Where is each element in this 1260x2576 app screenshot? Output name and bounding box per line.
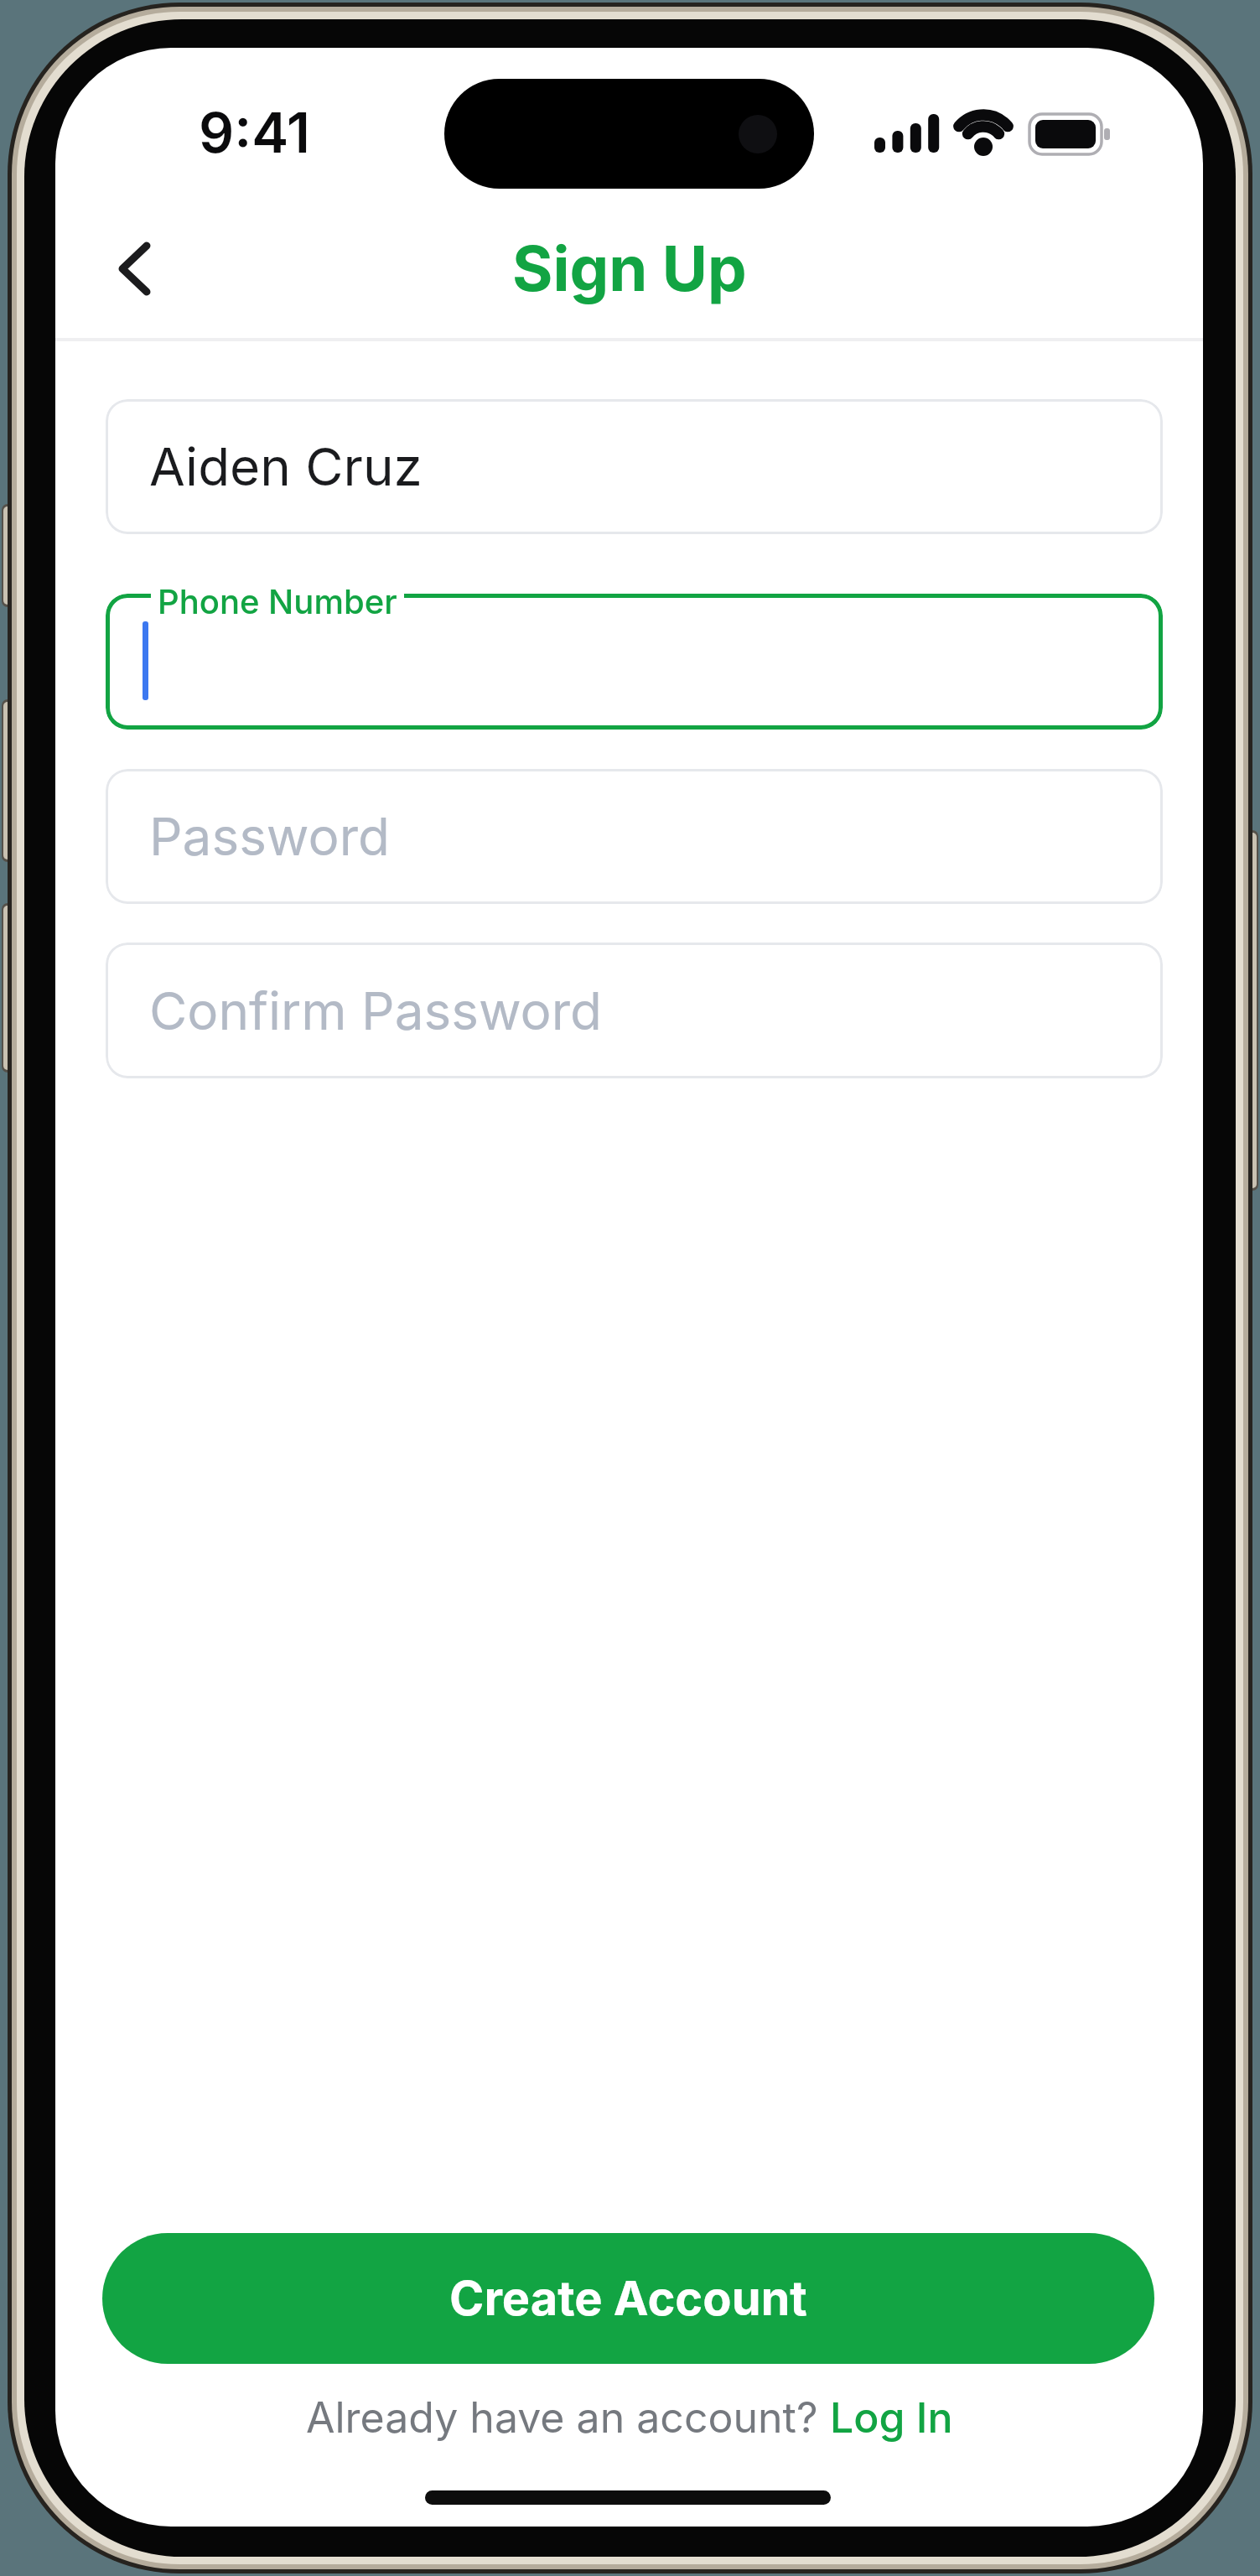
staticText: Already have an account? bbox=[306, 2392, 830, 2443]
staticText: Aiden Cruz bbox=[149, 435, 423, 498]
staticText: Password bbox=[149, 805, 390, 868]
staticText: Phone Number bbox=[158, 581, 397, 621]
button[interactable]: Aiden Cruz bbox=[106, 399, 1163, 534]
staticText: 9:41 bbox=[199, 99, 311, 166]
button[interactable] bbox=[106, 594, 1163, 730]
button[interactable] bbox=[97, 232, 173, 308]
button[interactable]: Create Account bbox=[102, 2233, 1154, 2364]
staticText: Sign Up bbox=[512, 231, 747, 306]
staticText: Create Account bbox=[449, 2270, 807, 2327]
button[interactable]: Confirm Password bbox=[106, 943, 1163, 1078]
button[interactable]: Password bbox=[106, 769, 1163, 904]
staticText: Confirm Password bbox=[149, 979, 603, 1042]
button[interactable]: Log In bbox=[830, 2392, 953, 2443]
